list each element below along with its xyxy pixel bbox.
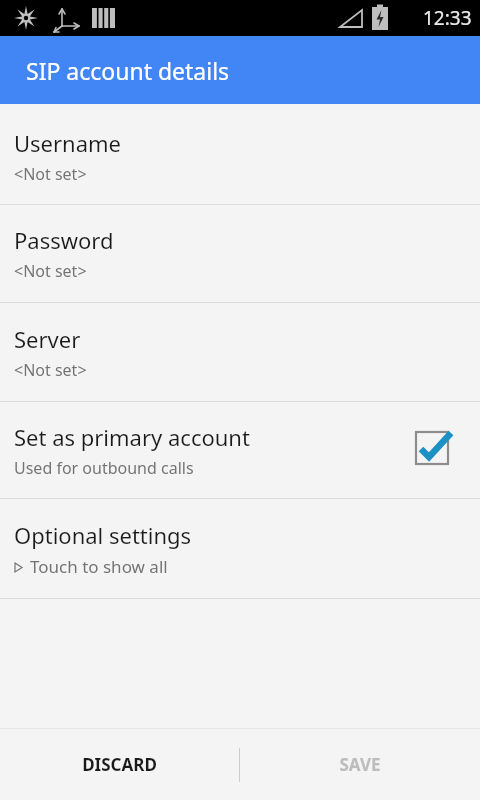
staticText: Set as primary account	[14, 422, 250, 452]
button[interactable]: Password	[0, 205, 480, 302]
button[interactable]: DISCARD	[0, 729, 239, 800]
staticText: SAVE	[339, 753, 381, 776]
button[interactable]: Optional settings	[0, 499, 480, 598]
staticText: Touch to show all	[30, 555, 168, 578]
staticText: Server	[14, 324, 81, 354]
staticText: <Not set>	[14, 260, 87, 282]
staticText: 12:33	[423, 5, 472, 31]
staticText: Username	[14, 128, 122, 158]
staticText: <Not set>	[14, 359, 87, 381]
staticText: Used for outbound calls	[14, 457, 194, 479]
staticText: DISCARD	[82, 753, 157, 776]
staticText: Password	[14, 225, 114, 255]
other: Set as primary account checkbox	[412, 428, 456, 472]
staticText: Optional settings	[14, 520, 192, 550]
button[interactable]: Username	[0, 108, 480, 204]
button[interactable]: SAVE	[240, 729, 480, 800]
staticText: <Not set>	[14, 163, 87, 185]
button[interactable]: Set as primary account	[0, 402, 480, 498]
button[interactable]: Server	[0, 303, 480, 401]
staticText: SIP account details	[26, 55, 230, 86]
